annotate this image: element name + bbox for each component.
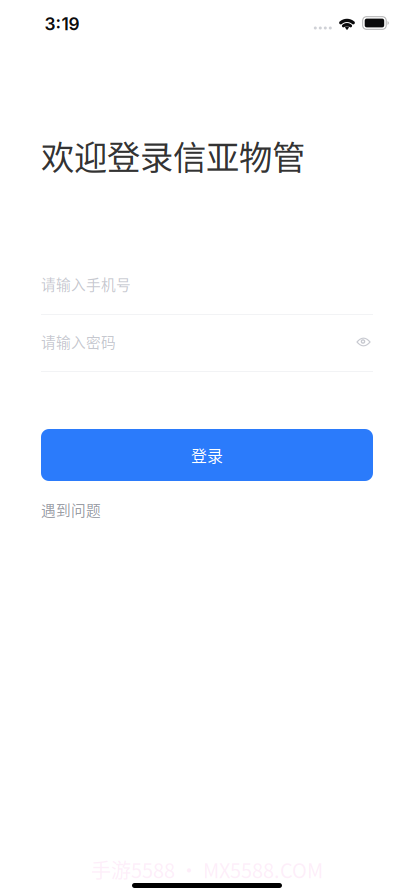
- staticText: 请输入手机号: [41, 273, 131, 294]
- staticText: 手游5588 · MX5588.COM: [91, 855, 323, 884]
- button[interactable]: 遇到问题: [41, 499, 101, 520]
- staticText: 遇到问题: [41, 499, 101, 520]
- button[interactable]: 登录: [41, 429, 373, 481]
- button[interactable]: 显示密码: [353, 330, 373, 352]
- staticText: 登录: [191, 443, 223, 467]
- staticText: 欢迎登录信亚物管: [41, 131, 305, 179]
- staticText: 请输入密码: [41, 331, 116, 352]
- staticText: 3:19: [44, 13, 79, 34]
